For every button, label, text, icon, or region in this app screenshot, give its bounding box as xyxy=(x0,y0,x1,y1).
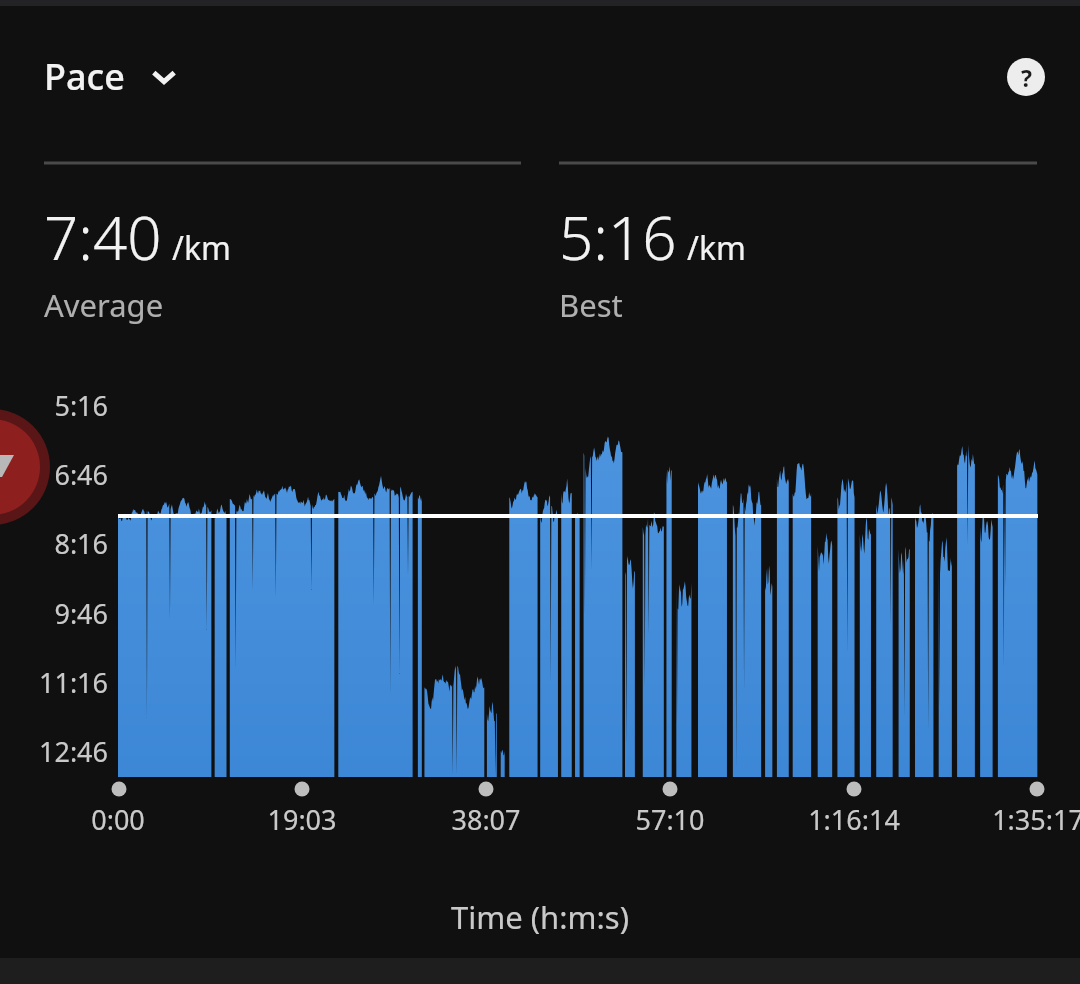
staticText: Average xyxy=(44,284,164,326)
button[interactable]: Pace xyxy=(44,52,189,101)
staticText: /km xyxy=(687,226,746,270)
button[interactable]: Help xyxy=(1002,53,1050,101)
staticText: Pace xyxy=(44,52,125,101)
staticText: 0:00 xyxy=(8,801,228,838)
staticText: 1:16:14 xyxy=(744,801,964,838)
staticText: 11:16 xyxy=(0,664,108,701)
staticText: 7:40 xyxy=(44,196,162,278)
staticText: 5:16 xyxy=(559,196,677,278)
staticText: 57:10 xyxy=(560,801,780,838)
staticText: 6:46 xyxy=(0,456,108,493)
staticText: Best xyxy=(559,284,623,326)
staticText: 38:07 xyxy=(376,801,596,838)
staticText: 19:03 xyxy=(192,801,412,838)
staticText: 1:35:17 xyxy=(928,801,1080,838)
staticText: /km xyxy=(172,226,231,270)
staticText: ? xyxy=(1021,62,1032,93)
staticText: Time (h:m:s) xyxy=(0,896,1080,938)
staticText: 12:46 xyxy=(0,733,108,770)
staticText: 9:46 xyxy=(0,595,108,632)
staticText: 5:16 xyxy=(0,387,108,424)
staticText: 8:16 xyxy=(0,525,108,562)
